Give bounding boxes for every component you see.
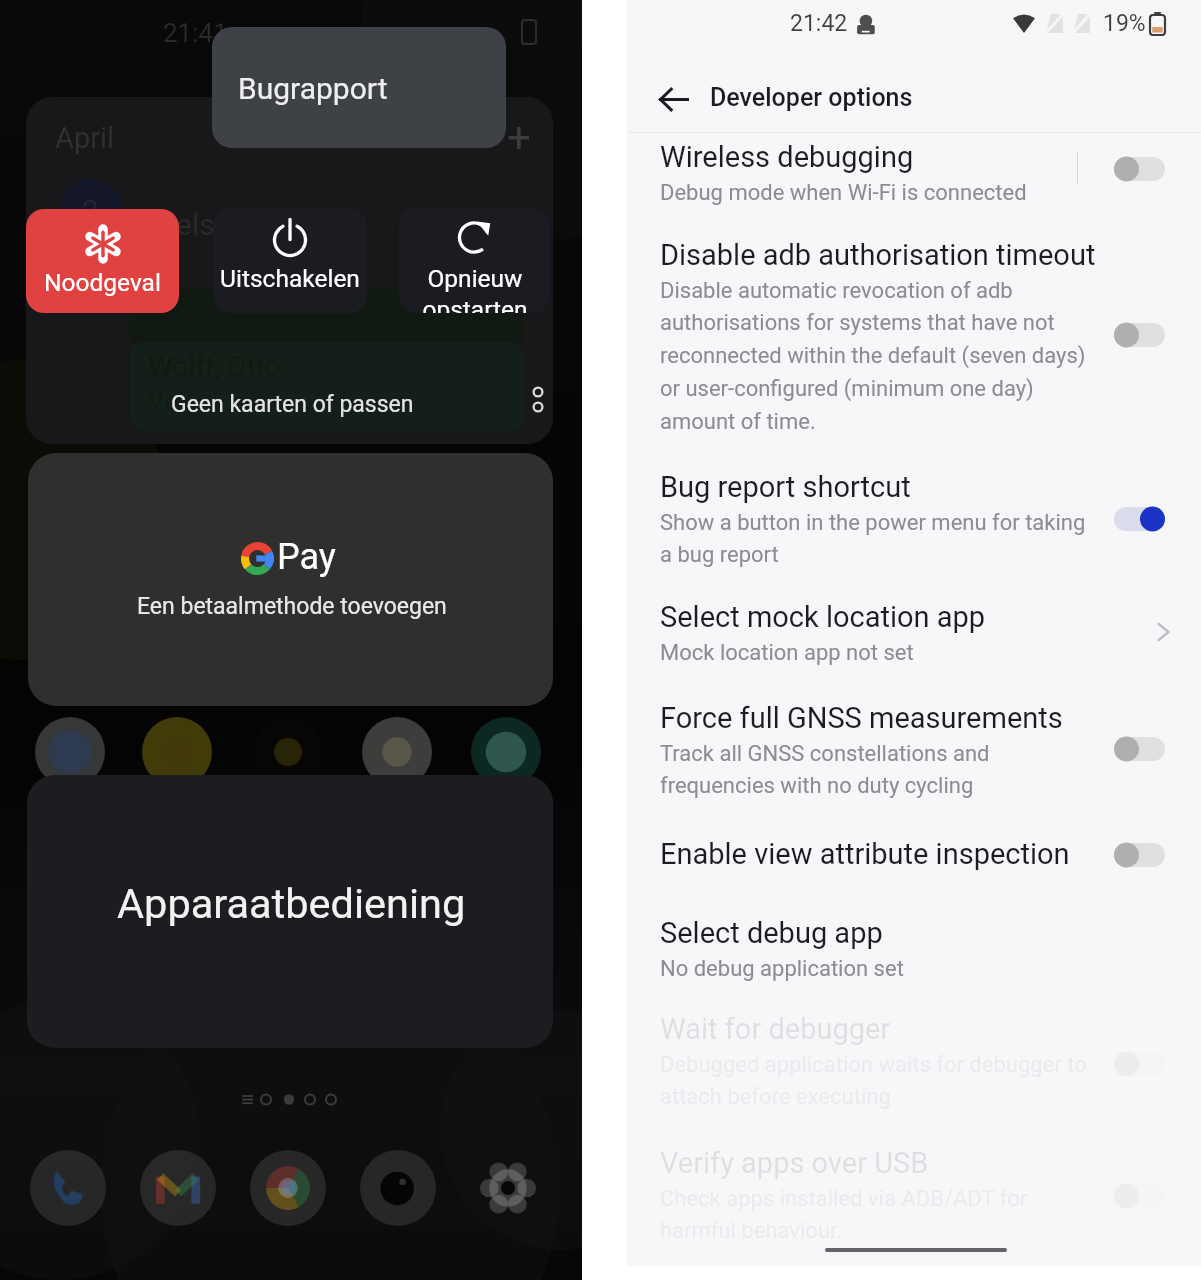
- button[interactable]: Switch off: [1114, 734, 1165, 764]
- staticText: Debug mode when Wi-Fi is connected: [660, 180, 1027, 206]
- button[interactable]: [627, 899, 1201, 997]
- button[interactable]: Bugrapport: [212, 27, 506, 148]
- button[interactable]: Switch on: [1114, 504, 1165, 534]
- staticText: Check apps installed via ADB/ADT for: [660, 1186, 1028, 1212]
- staticText: Disable adb authorisation timeout: [660, 238, 1096, 272]
- staticText: Mock location app not set: [660, 640, 914, 666]
- button[interactable]: Noodgeval: [26, 209, 179, 313]
- staticText: Verify apps over USB: [660, 1146, 929, 1180]
- button[interactable]: [627, 221, 1201, 451]
- button[interactable]: Pay: [28, 453, 553, 706]
- staticText: reconnected within the default (seven da…: [660, 343, 1086, 369]
- button[interactable]: [627, 684, 1201, 815]
- staticText: Ve: [148, 386, 178, 416]
- button[interactable]: Switch off: [1114, 1181, 1165, 1211]
- button[interactable]: Back: [645, 77, 701, 121]
- button[interactable]: Phone: [30, 1150, 106, 1226]
- button[interactable]: Switch off: [1114, 320, 1165, 350]
- staticText: 2: [82, 193, 99, 228]
- staticText: Wait for debugger: [660, 1012, 891, 1046]
- staticText: April: [55, 121, 115, 155]
- staticText: amount of time.: [660, 409, 816, 435]
- button[interactable]: Camera: [360, 1150, 436, 1226]
- staticText: Developer options: [710, 83, 913, 112]
- button[interactable]: [627, 453, 1201, 584]
- button[interactable]: Settings: [470, 1150, 546, 1226]
- staticText: Pay: [277, 536, 336, 578]
- button[interactable]: App shortcut: [35, 717, 105, 787]
- staticText: 19%: [1103, 10, 1146, 37]
- staticText: Enable view attribute inspection: [660, 837, 1070, 871]
- button[interactable]: [627, 583, 1201, 681]
- button[interactable]: Chrome: [250, 1150, 326, 1226]
- button[interactable]: App shortcut: [471, 717, 541, 787]
- staticText: Show a button in the power menu for taki…: [660, 510, 1086, 536]
- button[interactable]: App shortcut: [142, 717, 212, 787]
- staticText: Noodgeval: [44, 268, 161, 297]
- staticText: Een betaalmethode toevoegen: [137, 593, 447, 620]
- button[interactable]: Switch off: [1114, 1049, 1165, 1079]
- staticText: a bug report: [660, 542, 779, 568]
- button[interactable]: [627, 820, 1201, 884]
- staticText: Force full GNSS measurements: [660, 701, 1063, 735]
- button[interactable]: [627, 1129, 1201, 1260]
- staticText: attach before executing: [660, 1084, 891, 1110]
- staticText: Geen kaarten of passen: [171, 391, 414, 418]
- button[interactable]: Switch off: [1114, 840, 1165, 870]
- staticText: frequencies with no duty cycling: [660, 773, 974, 799]
- staticText: Track all GNSS constellations and: [660, 741, 990, 767]
- button[interactable]: [627, 995, 1201, 1126]
- staticText: No debug application set: [660, 956, 904, 982]
- button[interactable]: Uitschakelen: [213, 208, 367, 313]
- staticText: or user-configured (minimum one day): [660, 376, 1034, 402]
- button[interactable]: App shortcut: [253, 717, 323, 787]
- staticText: 21:41: [163, 18, 228, 48]
- staticText: Opnieuw opstarten: [422, 264, 528, 313]
- staticText: authorisations for systems that have not: [660, 310, 1055, 336]
- staticText: Select mock location app: [660, 600, 986, 634]
- button[interactable]: App shortcut: [362, 717, 432, 787]
- staticText: Bugrapport: [238, 71, 388, 106]
- staticText: Disable automatic revocation of adb: [660, 278, 1013, 304]
- staticText: 21:42: [790, 10, 848, 37]
- staticText: Apparaatbediening: [117, 879, 466, 928]
- button[interactable]: Opnieuw opstarten: [399, 208, 550, 313]
- button[interactable]: Gmail: [140, 1150, 216, 1226]
- staticText: harmful behaviour.: [660, 1218, 842, 1244]
- staticText: els: [176, 207, 215, 242]
- staticText: Uitschakelen: [220, 264, 360, 293]
- button[interactable]: [627, 123, 1201, 221]
- button[interactable]: Apparaatbediening: [27, 775, 553, 1048]
- staticText: Bug report shortcut: [660, 470, 911, 504]
- staticText: Debugged application waits for debugger …: [660, 1052, 1087, 1078]
- staticText: Select debug app: [660, 916, 883, 950]
- button[interactable]: Open: [1145, 614, 1181, 650]
- staticText: Wireless debugging: [660, 140, 914, 174]
- button[interactable]: Switch off: [1114, 154, 1165, 184]
- staticText: +: [507, 113, 531, 162]
